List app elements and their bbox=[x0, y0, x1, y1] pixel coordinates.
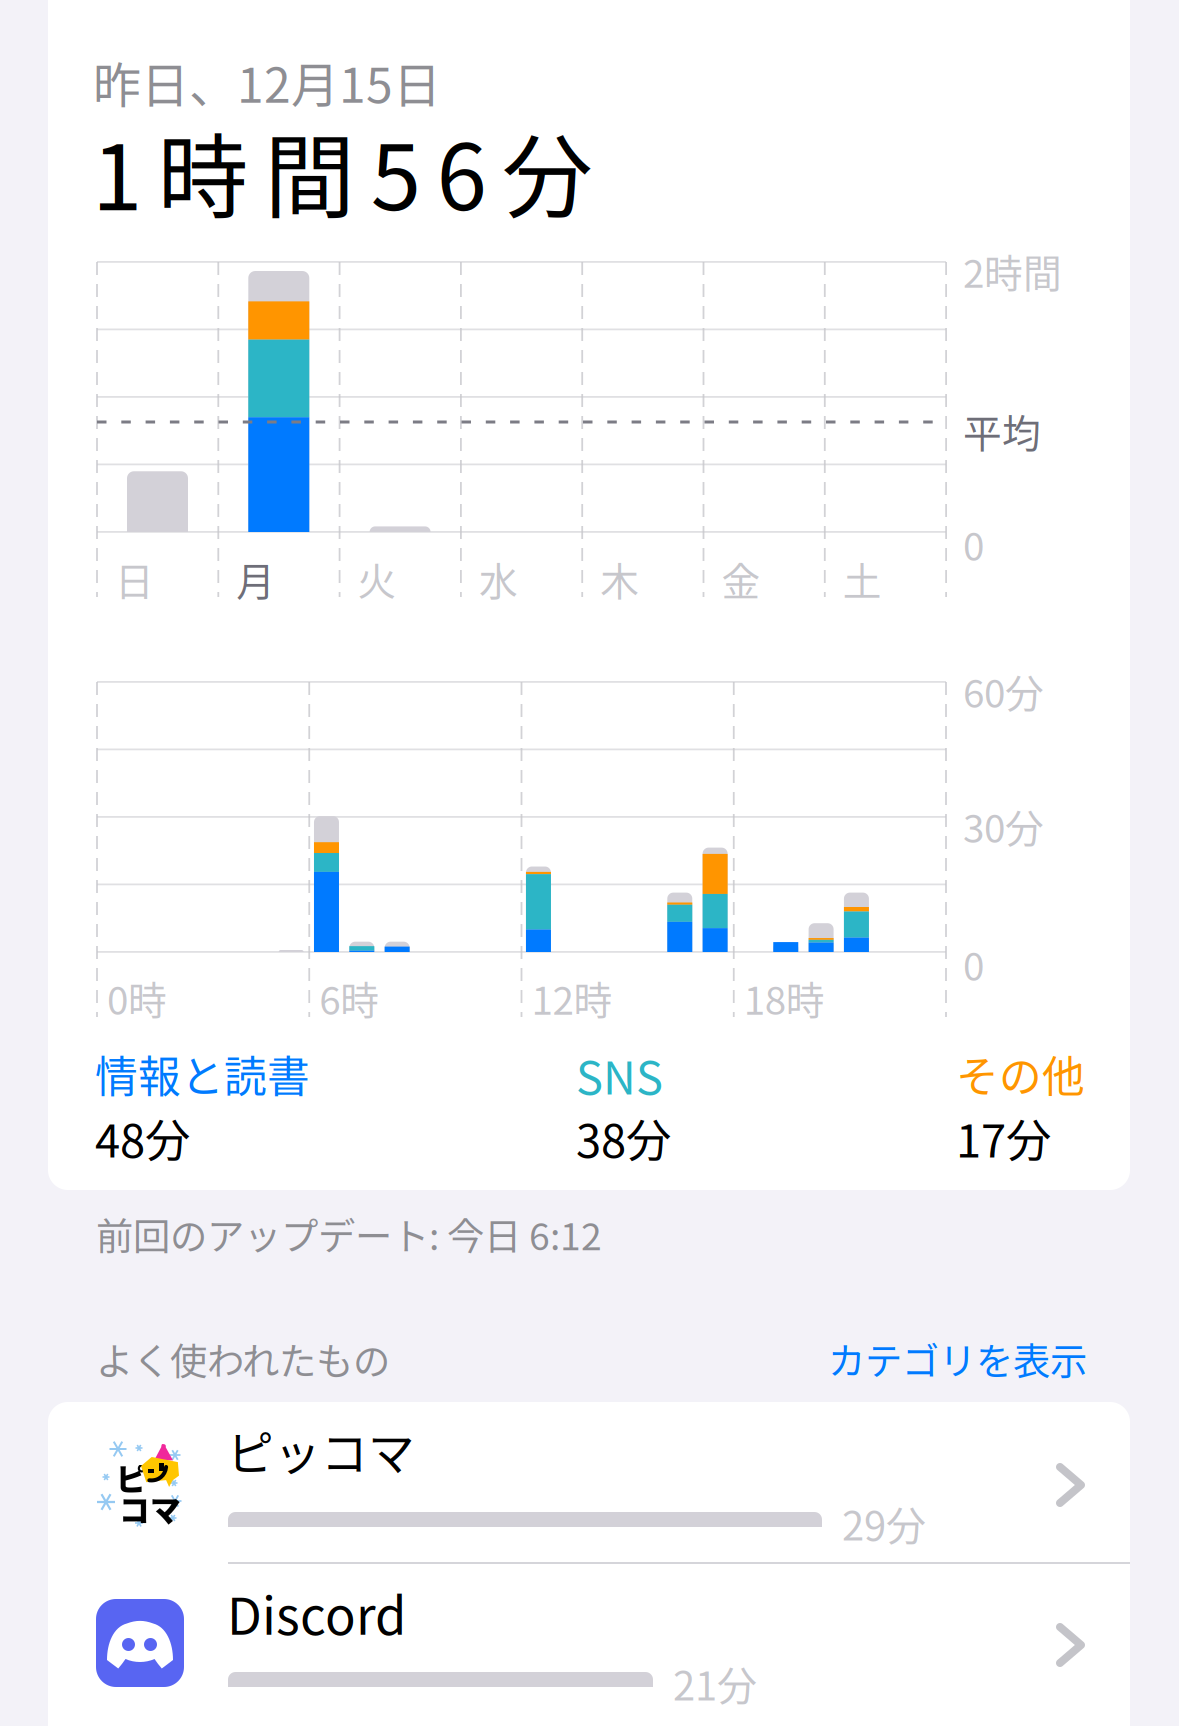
staticText: 29分 bbox=[842, 1494, 926, 1552]
staticText: ピ bbox=[116, 1455, 147, 1499]
staticText: 木 bbox=[600, 551, 639, 607]
staticText: 火 bbox=[358, 551, 397, 607]
staticText: 時 bbox=[158, 105, 249, 236]
staticText: 金 bbox=[721, 551, 760, 607]
staticText: 0時 bbox=[107, 970, 167, 1026]
staticText: 分 bbox=[502, 105, 593, 236]
staticText: 間 bbox=[264, 105, 355, 236]
staticText: 土 bbox=[843, 551, 882, 607]
staticText: 0 bbox=[963, 516, 984, 572]
staticText: 情報と読書 bbox=[95, 1043, 310, 1105]
staticText: SNS bbox=[576, 1042, 663, 1108]
staticText: Discord bbox=[227, 1576, 406, 1649]
staticText: 前回のアップデート: 今日 6:12 bbox=[96, 1207, 602, 1261]
staticText: 30分 bbox=[963, 798, 1044, 854]
staticText: ピッコマ bbox=[227, 1416, 415, 1484]
staticText: 0 bbox=[963, 936, 984, 992]
staticText: 38分 bbox=[576, 1105, 671, 1171]
button[interactable]: カテゴリを表示 bbox=[0, 0, 620, 62]
staticText: 60分 bbox=[963, 663, 1044, 719]
staticText: 月 bbox=[236, 551, 275, 607]
staticText: 6時 bbox=[319, 970, 379, 1026]
staticText: 5 bbox=[371, 105, 421, 236]
staticText: 2時間 bbox=[963, 243, 1062, 299]
staticText: 平均 bbox=[963, 403, 1041, 459]
staticText: カテゴリを表示 bbox=[828, 1332, 1087, 1386]
button[interactable]: ピ bbox=[0, 0, 1179, 1726]
staticText: 12時 bbox=[531, 970, 612, 1026]
staticText: 18時 bbox=[744, 970, 825, 1026]
staticText: 1 bbox=[92, 105, 142, 236]
staticText: コマ bbox=[119, 1486, 181, 1530]
staticText: よく使われたもの bbox=[96, 1332, 390, 1386]
staticText: 水 bbox=[479, 551, 518, 607]
staticText: 日 bbox=[115, 551, 154, 607]
staticText: 48分 bbox=[95, 1105, 190, 1171]
button[interactable]: Discord bbox=[0, 0, 1179, 1726]
staticText: 6 bbox=[436, 105, 486, 236]
staticText: 21分 bbox=[673, 1654, 757, 1712]
staticText: その他 bbox=[956, 1043, 1085, 1105]
staticText: 17分 bbox=[956, 1105, 1051, 1171]
staticText: 昨日、12月15日 bbox=[93, 47, 441, 116]
